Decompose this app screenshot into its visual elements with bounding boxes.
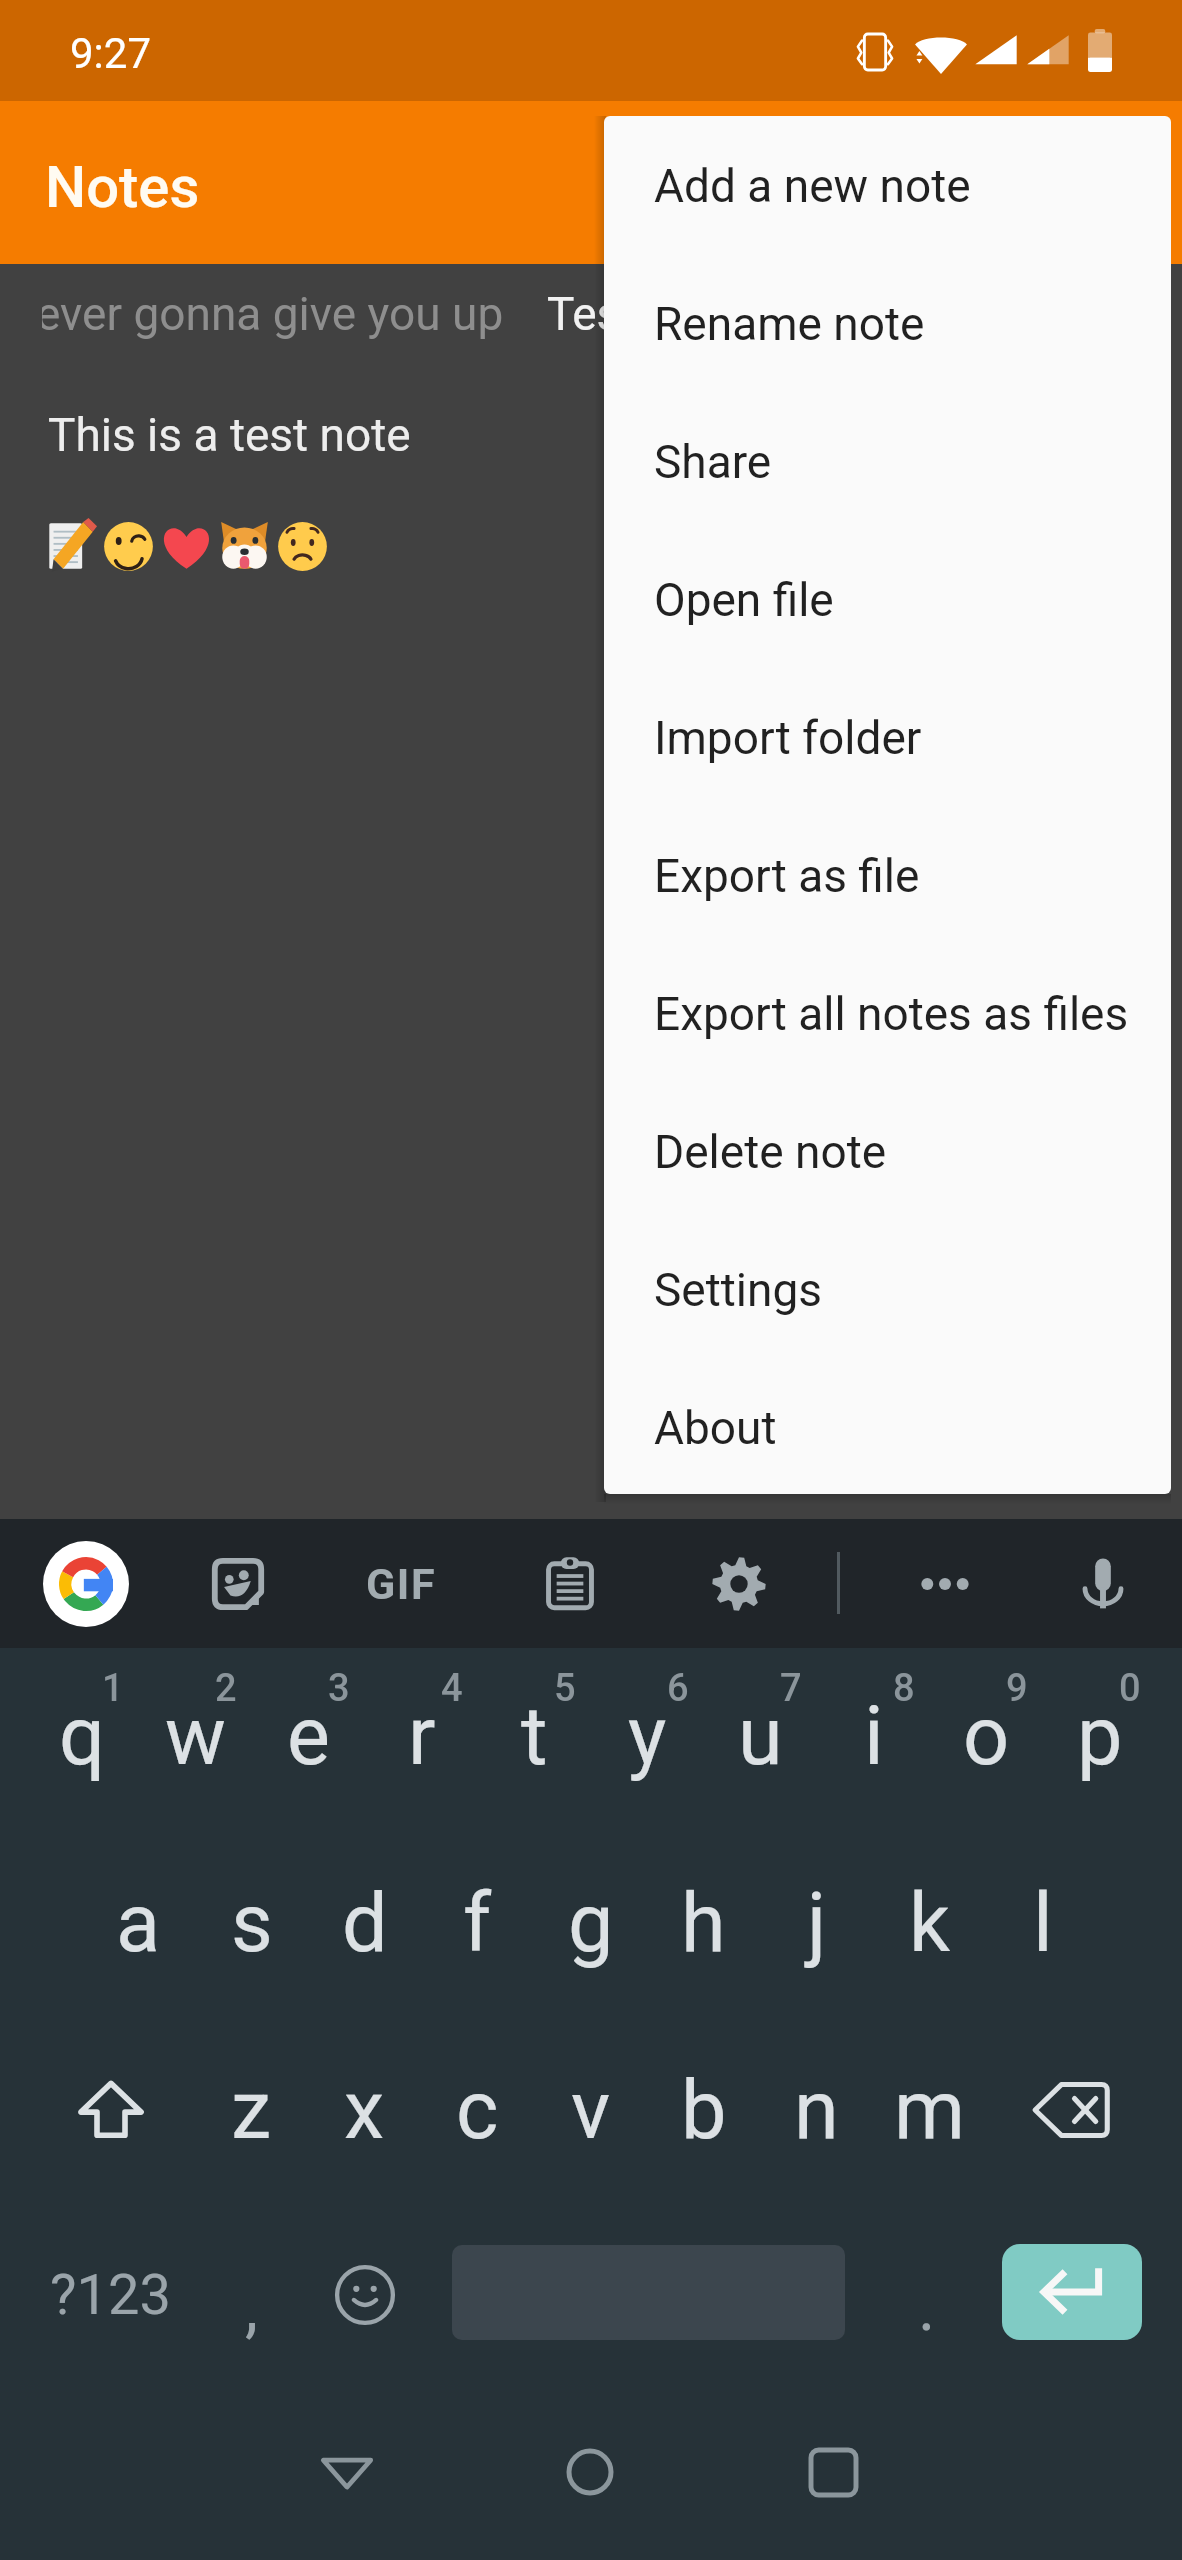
staticText: s: [231, 1876, 273, 1971]
staticText: c: [456, 2063, 499, 2158]
button[interactable]: z: [195, 2020, 308, 2200]
staticText: z: [231, 2063, 272, 2158]
staticText: 0: [1119, 1666, 1141, 1711]
button[interactable]: l: [986, 1830, 1099, 2016]
button[interactable]: Import folder: [604, 669, 1171, 807]
button[interactable]: s: [195, 1830, 308, 2016]
staticText: y: [628, 1689, 667, 1784]
button[interactable]: Backspace: [987, 2020, 1156, 2200]
button[interactable]: Add a new note: [604, 117, 1171, 255]
button[interactable]: 0: [1043, 1648, 1156, 1834]
button[interactable]: Shift: [26, 2020, 195, 2200]
button[interactable]: GIF: [360, 1556, 442, 1612]
button[interactable]: a: [82, 1830, 195, 2016]
staticText: n: [794, 2063, 839, 2158]
staticText: Settings: [654, 1263, 822, 1317]
staticText: Notes: [45, 153, 200, 221]
staticText: q: [59, 1689, 106, 1784]
staticText: Import folder: [654, 711, 922, 765]
button[interactable]: Test: [547, 287, 636, 341]
button[interactable]: 4: [365, 1648, 478, 1834]
button[interactable]: k: [873, 1830, 986, 2016]
staticText: .: [918, 2269, 936, 2346]
button[interactable]: m: [873, 2020, 986, 2200]
button[interactable]: 9: [930, 1648, 1043, 1834]
button[interactable]: ?123: [26, 2200, 195, 2390]
staticText: About: [654, 1401, 777, 1455]
button[interactable]: Export all notes as files: [604, 945, 1171, 1083]
button[interactable]: 8: [817, 1648, 930, 1834]
staticText: r: [408, 1689, 436, 1784]
button[interactable]: Clipboard: [527, 1541, 613, 1627]
button[interactable]: Home: [502, 2384, 678, 2560]
staticText: m: [894, 2063, 966, 2158]
staticText: Share: [654, 435, 772, 489]
staticText: v: [571, 2063, 611, 2158]
staticText: t: [521, 1689, 548, 1784]
staticText: This is a test note: [48, 408, 411, 462]
staticText: a: [116, 1876, 161, 1971]
staticText: h: [681, 1876, 726, 1971]
staticText: Export all notes as files: [654, 987, 1129, 1041]
staticText: 3: [328, 1666, 350, 1711]
button[interactable]: Settings: [604, 1221, 1171, 1359]
button[interactable]: 7: [704, 1648, 817, 1834]
button[interactable]: ever gonna give you up: [42, 287, 504, 341]
button[interactable]: c: [421, 2020, 534, 2200]
staticText: w: [165, 1689, 226, 1784]
button[interactable]: Google search: [43, 1541, 129, 1627]
button[interactable]: Share: [604, 393, 1171, 531]
button[interactable]: 1: [26, 1648, 139, 1834]
staticText: 2: [215, 1666, 237, 1711]
staticText: 7: [780, 1666, 802, 1711]
button[interactable]: Enter: [1002, 2244, 1142, 2340]
staticText: 6: [667, 1666, 689, 1711]
button[interactable]: Back: [259, 2384, 435, 2560]
staticText: Rename note: [654, 297, 925, 351]
button[interactable]: About: [604, 1359, 1171, 1494]
button[interactable]: x: [308, 2020, 421, 2200]
staticText: 5: [554, 1666, 576, 1711]
button[interactable]: v: [534, 2020, 647, 2200]
staticText: e: [287, 1689, 330, 1784]
staticText: x: [344, 2063, 385, 2158]
staticText: k: [909, 1876, 951, 1971]
button[interactable]: j: [760, 1830, 873, 2016]
button[interactable]: Delete note: [604, 1083, 1171, 1221]
staticText: i: [864, 1689, 884, 1784]
staticText: ,: [245, 2269, 258, 2346]
button[interactable]: Voice input: [1060, 1541, 1146, 1627]
button[interactable]: .: [870, 2200, 983, 2390]
button[interactable]: ,: [195, 2200, 308, 2390]
staticText: GIF: [366, 1559, 436, 1609]
button[interactable]: More options: [902, 1541, 988, 1627]
button[interactable]: 3: [252, 1648, 365, 1834]
button[interactable]: Settings: [696, 1541, 782, 1627]
button[interactable]: f: [421, 1830, 534, 2016]
staticText: l: [1033, 1876, 1053, 1971]
button[interactable]: Notes: [0, 101, 1182, 264]
staticText: o: [963, 1689, 1010, 1784]
button[interactable]: b: [647, 2020, 760, 2200]
staticText: p: [1077, 1689, 1123, 1784]
button[interactable]: 6: [591, 1648, 704, 1834]
button[interactable]: Emoji: [308, 2200, 421, 2390]
staticText: j: [807, 1876, 827, 1971]
staticText: b: [681, 2063, 727, 2158]
button[interactable]: Export as file: [604, 807, 1171, 945]
button[interactable]: 5: [478, 1648, 591, 1834]
staticText: f: [463, 1876, 492, 1971]
button[interactable]: h: [647, 1830, 760, 2016]
button[interactable]: 2: [139, 1648, 252, 1834]
staticText: 9:27: [70, 29, 151, 78]
button[interactable]: g: [534, 1830, 647, 2016]
button[interactable]: Stickers: [195, 1541, 281, 1627]
button[interactable]: Rename note: [604, 255, 1171, 393]
staticText: ?123: [50, 2262, 171, 2328]
button[interactable]: n: [760, 2020, 873, 2200]
button[interactable]: Recents: [745, 2384, 921, 2560]
button[interactable]: Open file: [604, 531, 1171, 669]
staticText: Delete note: [654, 1125, 887, 1179]
button[interactable]: d: [308, 1830, 421, 2016]
